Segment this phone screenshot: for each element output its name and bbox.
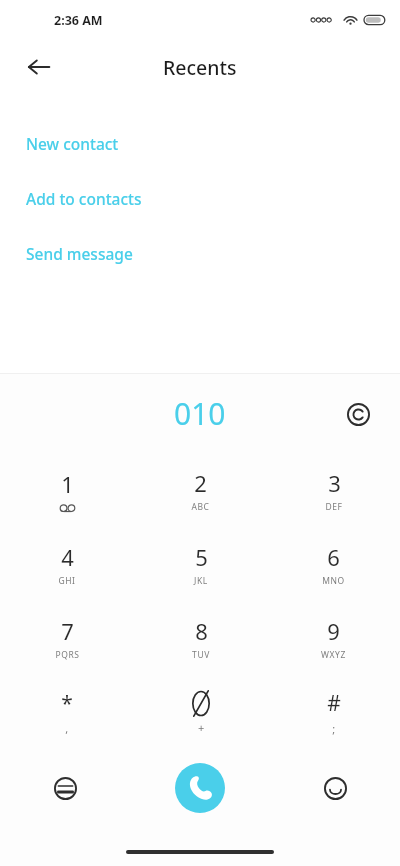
staticText: ; — [332, 721, 336, 736]
staticText: Send message — [26, 243, 133, 264]
staticText: DEF — [325, 501, 343, 513]
button[interactable]: New contact — [0, 116, 400, 171]
button[interactable]: Send message — [0, 226, 400, 281]
staticText: # — [327, 689, 341, 718]
button[interactable]: + — [134, 675, 267, 749]
staticText: 9 — [327, 616, 340, 646]
staticText: 2 — [194, 468, 207, 498]
button[interactable]: 3 — [267, 453, 400, 527]
staticText: WXYZ — [321, 649, 346, 661]
button[interactable]: 6 — [267, 527, 400, 601]
staticText: ABC — [191, 501, 210, 513]
button[interactable]: Clear number — [337, 393, 379, 435]
staticText: 3 — [328, 468, 341, 498]
staticText: * — [61, 689, 73, 718]
staticText: 5 — [195, 542, 208, 572]
staticText: 7 — [61, 616, 74, 646]
staticText: Recents — [163, 54, 237, 81]
staticText: MNO — [322, 575, 345, 587]
staticText: GHI — [58, 575, 76, 587]
staticText: 8 — [195, 616, 208, 646]
staticText: , — [65, 721, 69, 736]
button[interactable]: * — [0, 675, 134, 749]
staticText: 2:36 AM — [54, 12, 103, 29]
staticText: New contact — [26, 133, 119, 154]
staticText: 4 — [61, 542, 74, 572]
button[interactable]: 1 — [0, 453, 134, 527]
button[interactable]: Contacts — [314, 767, 356, 809]
button[interactable]: 5 — [134, 527, 267, 601]
button[interactable]: Keypad — [44, 767, 86, 809]
staticText: Add to contacts — [26, 188, 142, 209]
staticText: JKL — [194, 575, 208, 587]
staticText: PQRS — [55, 649, 80, 661]
staticText: 010 — [174, 393, 226, 434]
button[interactable]: 7 — [0, 601, 134, 675]
button[interactable]: Add to contacts — [0, 171, 400, 226]
button[interactable]: Call — [175, 763, 225, 813]
staticText: + — [198, 720, 205, 735]
button[interactable]: 2 — [134, 453, 267, 527]
button[interactable]: 8 — [134, 601, 267, 675]
button[interactable]: # — [267, 675, 400, 749]
staticText: 6 — [327, 542, 340, 572]
staticText: 1 — [61, 469, 74, 499]
button[interactable]: Back — [17, 45, 61, 89]
staticText: TUV — [192, 649, 210, 661]
button[interactable]: 9 — [267, 601, 400, 675]
button[interactable]: 4 — [0, 527, 134, 601]
